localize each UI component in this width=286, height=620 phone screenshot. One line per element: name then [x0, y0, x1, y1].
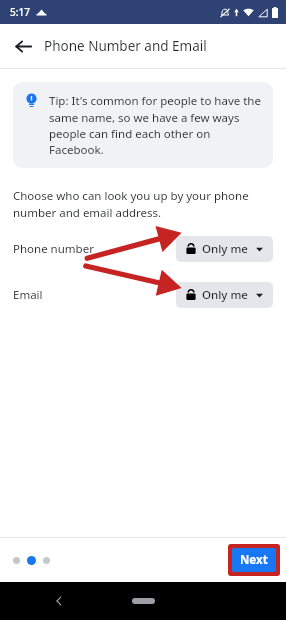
staticText: Choose who can look you up by your phone… — [13, 188, 249, 220]
staticText: Tip: It's common for people to have the … — [49, 93, 262, 157]
staticText: Only me — [202, 241, 248, 257]
button[interactable]: Next — [232, 548, 276, 572]
staticText: Phone Number and Email — [44, 37, 207, 55]
button[interactable]: Back — [6, 29, 40, 63]
button[interactable]: Only me — [176, 236, 273, 262]
staticText: Email — [13, 287, 176, 303]
staticText: 5:17 — [10, 5, 30, 19]
button[interactable]: Home — [132, 598, 155, 604]
staticText: Phone number — [13, 241, 176, 257]
button[interactable]: Only me — [176, 282, 273, 308]
staticText: Only me — [202, 287, 248, 303]
button[interactable]: Back — [46, 588, 72, 614]
staticText: Next — [240, 552, 268, 568]
